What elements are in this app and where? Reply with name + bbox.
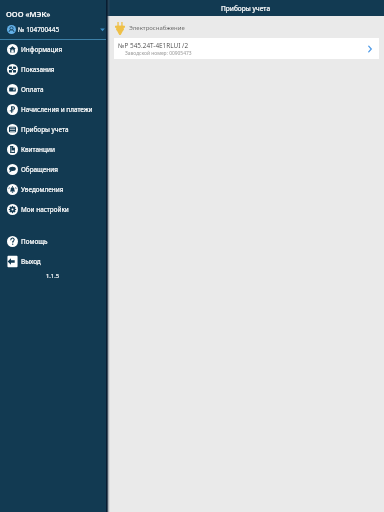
staticText: Выход [21, 257, 41, 266]
staticText: Показания [21, 65, 55, 74]
button[interactable]: №Р 545.24Т-4Е1RLUI /2 [114, 38, 379, 59]
staticText: № 104700445 [18, 25, 60, 34]
staticText: Электроснабжение [129, 24, 185, 32]
staticText: Оплата [21, 85, 44, 94]
button[interactable]: Информация [0, 39, 106, 59]
button[interactable]: Приборы учета [0, 119, 106, 139]
staticText: Обращения [21, 165, 58, 174]
button[interactable]: Квитанции [0, 139, 106, 159]
staticText: №Р 545.24Т-4Е1RLUI /2 [118, 41, 189, 50]
staticText: Начисления и платежи [21, 105, 93, 114]
button[interactable]: Обращения [0, 159, 106, 179]
button[interactable]: Показания [0, 59, 106, 79]
staticText: 1.1.5 [46, 272, 60, 280]
staticText: Уведомления [21, 185, 64, 194]
staticText: ООО «МЭК» [6, 9, 51, 19]
staticText: Приборы учета [21, 125, 69, 134]
button[interactable]: Мои настройки [0, 199, 106, 219]
staticText: Информация [21, 45, 63, 54]
button[interactable]: Оплата [0, 79, 106, 99]
staticText: Мои настройки [21, 205, 69, 214]
other: Подробнее [366, 45, 374, 53]
button[interactable]: № 104700445 [0, 22, 106, 36]
staticText: Квитанции [21, 145, 55, 154]
staticText: Заводской номер: 00905473 [125, 50, 192, 57]
staticText: Помощь [21, 237, 48, 246]
button[interactable]: Уведомления [0, 179, 106, 199]
button[interactable]: Помощь [0, 231, 106, 251]
staticText: Приборы учета [221, 4, 271, 13]
button[interactable]: Выход [0, 251, 106, 271]
button[interactable]: Начисления и платежи [0, 99, 106, 119]
